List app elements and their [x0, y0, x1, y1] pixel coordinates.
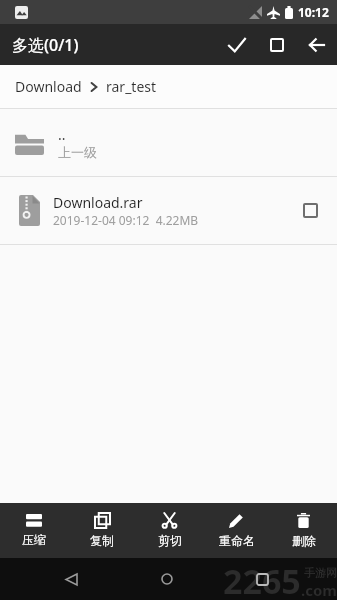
staticText: 压缩 — [22, 532, 46, 547]
button[interactable] — [257, 25, 297, 65]
staticText: 手游网 — [304, 566, 337, 580]
staticText: 10:12 — [298, 4, 329, 20]
staticText: 删除 — [292, 533, 316, 548]
staticText: 剪切 — [158, 533, 182, 548]
staticText: .. — [58, 125, 66, 144]
button[interactable] — [249, 566, 275, 592]
button[interactable]: 删除 — [270, 503, 337, 558]
staticText: 2019-12-04 09:12 4.22MB — [53, 212, 199, 228]
button[interactable]: Download.rar — [0, 177, 337, 245]
staticText: 复制 — [90, 533, 114, 548]
staticText: Download.rar — [53, 193, 143, 212]
button[interactable] — [217, 25, 257, 65]
button[interactable] — [154, 566, 180, 592]
button[interactable]: 剪切 — [136, 503, 203, 558]
button[interactable]: 重命名 — [203, 503, 270, 558]
button[interactable] — [303, 203, 318, 218]
button[interactable] — [58, 566, 84, 592]
staticText: rar_test — [106, 77, 157, 96]
staticText: 多选(0/1) — [12, 34, 79, 56]
staticText: Download — [15, 77, 82, 96]
staticText: 2265 — [223, 558, 301, 600]
staticText: 重命名 — [219, 533, 255, 548]
button[interactable]: 压缩 — [0, 503, 68, 558]
button[interactable] — [297, 25, 337, 65]
staticText: .com — [301, 580, 337, 600]
button[interactable]: 复制 — [68, 503, 136, 558]
staticText: 上一级 — [58, 144, 97, 160]
button[interactable]: .. — [0, 109, 337, 177]
